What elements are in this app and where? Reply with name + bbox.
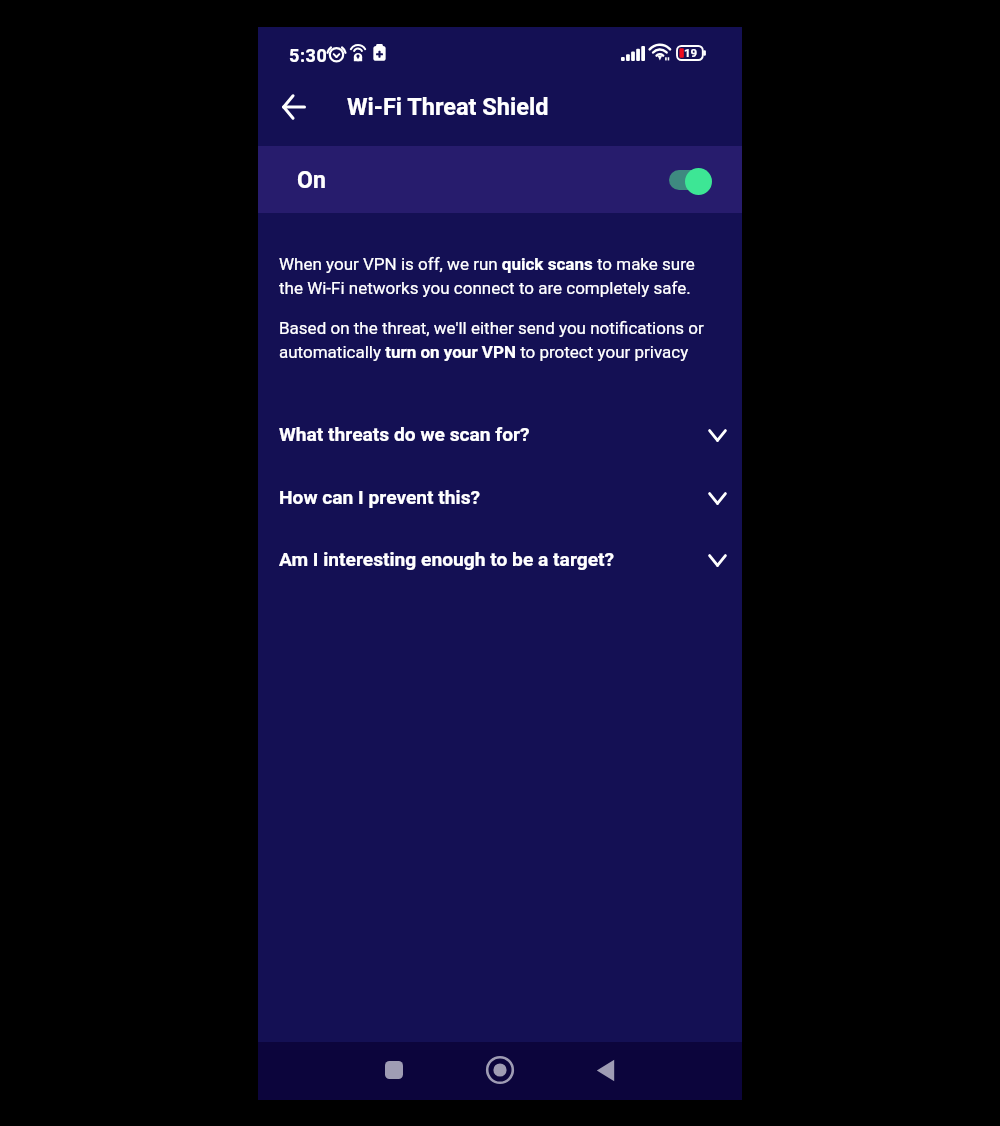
button[interactable]: Am I interesting enough to be a target?	[258, 528, 742, 590]
staticText: Wi-Fi Threat Shield	[347, 93, 549, 121]
staticText: When your VPN is off, we run quick scans…	[279, 254, 711, 299]
staticText: Based on the threat, we'll either send y…	[279, 318, 729, 363]
button[interactable]: Recent apps	[364, 1042, 424, 1100]
button[interactable]: Home	[470, 1042, 530, 1100]
button[interactable]: How can I prevent this?	[258, 466, 742, 528]
staticText: How can I prevent this?	[279, 486, 481, 509]
button[interactable]: Back	[266, 79, 322, 146]
staticText: 5:30	[289, 45, 328, 66]
button[interactable]: What threats do we scan for?	[258, 403, 742, 465]
staticText: Am I interesting enough to be a target?	[279, 548, 615, 571]
staticText: On	[297, 167, 326, 194]
button[interactable]: On	[258, 146, 742, 213]
staticText: What threats do we scan for?	[279, 423, 530, 446]
staticText: 19	[684, 46, 698, 59]
button[interactable]: Back	[575, 1042, 635, 1100]
